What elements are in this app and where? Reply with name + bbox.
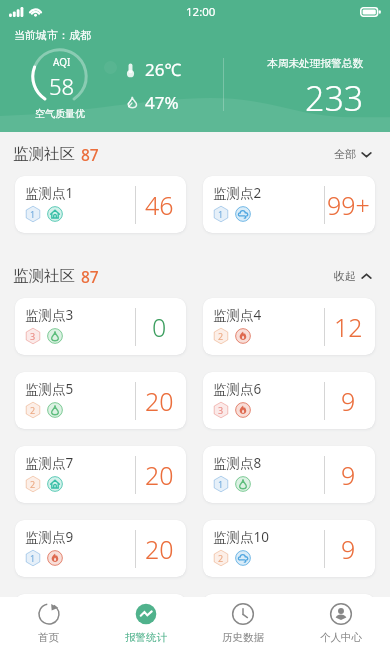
staticText: 1 (218, 478, 224, 490)
staticText: 1 (218, 208, 224, 220)
staticText: 2 (218, 625, 224, 637)
staticText: 9 (341, 458, 356, 492)
staticText: 监测点9 (25, 528, 74, 546)
staticText: 首页 (38, 631, 59, 644)
button[interactable]: 历史数据 (194, 597, 292, 650)
staticText: 12:00 (186, 4, 216, 20)
staticText: AQI (53, 55, 71, 69)
staticText: 99+ (327, 188, 370, 222)
button[interactable]: 监测点12 (203, 594, 375, 650)
staticText: 2 (218, 552, 224, 564)
staticText: 监测点8 (213, 454, 262, 472)
staticText: 58 (49, 71, 75, 101)
button[interactable]: 报警统计 (97, 597, 194, 650)
staticText: 3 (341, 605, 356, 639)
staticText: 监测点7 (25, 454, 74, 472)
staticText: 监测点6 (213, 380, 262, 398)
staticText: 46 (145, 188, 174, 222)
staticText: 本周未处理报警总数 (267, 57, 364, 70)
button[interactable]: 监测点3 (15, 298, 186, 355)
staticText: 3 (218, 404, 224, 416)
staticText: 2 (30, 478, 36, 490)
staticText: 2 (218, 330, 224, 342)
staticText: 0 (152, 310, 167, 344)
staticText: 3 (30, 330, 36, 342)
button[interactable]: 监测点8 (203, 446, 375, 503)
button[interactable]: 监测点6 (203, 372, 375, 429)
staticText: 监测点10 (213, 528, 269, 546)
staticText: 当前城市：成都 (14, 28, 91, 42)
staticText: 监测点11 (25, 601, 81, 619)
button[interactable]: 监测点9 (15, 520, 186, 577)
staticText: 26℃ (145, 58, 182, 81)
staticText: 20 (145, 458, 174, 492)
staticText: 9 (341, 384, 356, 418)
staticText: 全部 (334, 147, 356, 161)
button[interactable]: 监测点5 (15, 372, 186, 429)
staticText: 5 (152, 605, 167, 639)
staticText: 1 (30, 208, 36, 220)
staticText: 20 (145, 384, 174, 418)
staticText: 报警统计 (125, 631, 167, 644)
staticText: 20 (145, 532, 174, 566)
button[interactable]: 监测点2 (203, 176, 375, 233)
staticText: 历史数据 (222, 631, 264, 644)
button[interactable]: 监测点10 (203, 520, 375, 577)
button[interactable]: 监测点1 (15, 176, 186, 233)
staticText: 2 (30, 404, 36, 416)
staticText: 监测点12 (213, 601, 269, 619)
staticText: 47% (145, 91, 179, 114)
staticText: 87 (81, 144, 99, 165)
button[interactable]: 全部 (330, 141, 376, 167)
button[interactable]: 收起 (330, 263, 376, 289)
staticText: 监测点1 (25, 184, 74, 202)
button[interactable]: 监测点4 (203, 298, 375, 355)
button[interactable]: 监测点7 (15, 446, 186, 503)
staticText: 监测点5 (25, 380, 74, 398)
staticText: 监测点2 (213, 184, 262, 202)
button[interactable]: 首页 (0, 597, 97, 650)
staticText: 监测社区 (13, 144, 75, 164)
staticText: 收起 (334, 269, 356, 283)
button[interactable]: 监测点11 (15, 594, 186, 650)
staticText: 87 (81, 266, 99, 287)
staticText: 监测社区 (13, 266, 75, 286)
staticText: 1 (30, 552, 36, 564)
button[interactable]: 个人中心 (292, 597, 390, 650)
staticText: 233 (305, 75, 364, 121)
staticText: 监测点4 (213, 306, 262, 324)
staticText: 监测点3 (25, 306, 74, 324)
staticText: 空气质量优 (35, 107, 85, 120)
staticText: 个人中心 (320, 631, 362, 644)
staticText: 12 (334, 310, 363, 344)
staticText: 9 (341, 532, 356, 566)
